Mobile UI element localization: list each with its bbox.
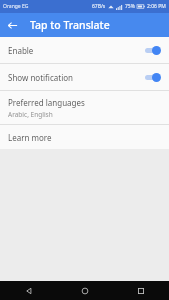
button[interactable]: Home: [57, 281, 113, 300]
staticText: Enable: [8, 45, 144, 56]
button[interactable]: Show notification: [0, 64, 169, 90]
button[interactable]: Enable: [0, 37, 169, 63]
staticText: 67B/s: [92, 3, 106, 10]
button[interactable]: Toggle: [144, 45, 161, 55]
staticText: 2:06 PM: [147, 3, 166, 10]
button[interactable]: Learn more: [0, 125, 169, 149]
button[interactable]: Preferred languages: [0, 91, 169, 124]
button[interactable]: Back: [0, 13, 24, 37]
staticText: 75%: [125, 3, 135, 10]
staticText: Preferred languages: [8, 97, 85, 108]
staticText: Tap to Translate: [30, 18, 110, 32]
staticText: Show notification: [8, 72, 144, 83]
button[interactable]: Recent apps: [113, 281, 169, 300]
button[interactable]: Back: [0, 281, 57, 300]
button[interactable]: Toggle: [144, 72, 161, 82]
staticText: Arabic, English: [8, 110, 53, 119]
staticText: Learn more: [8, 132, 52, 143]
staticText: Orange EG: [3, 3, 29, 10]
